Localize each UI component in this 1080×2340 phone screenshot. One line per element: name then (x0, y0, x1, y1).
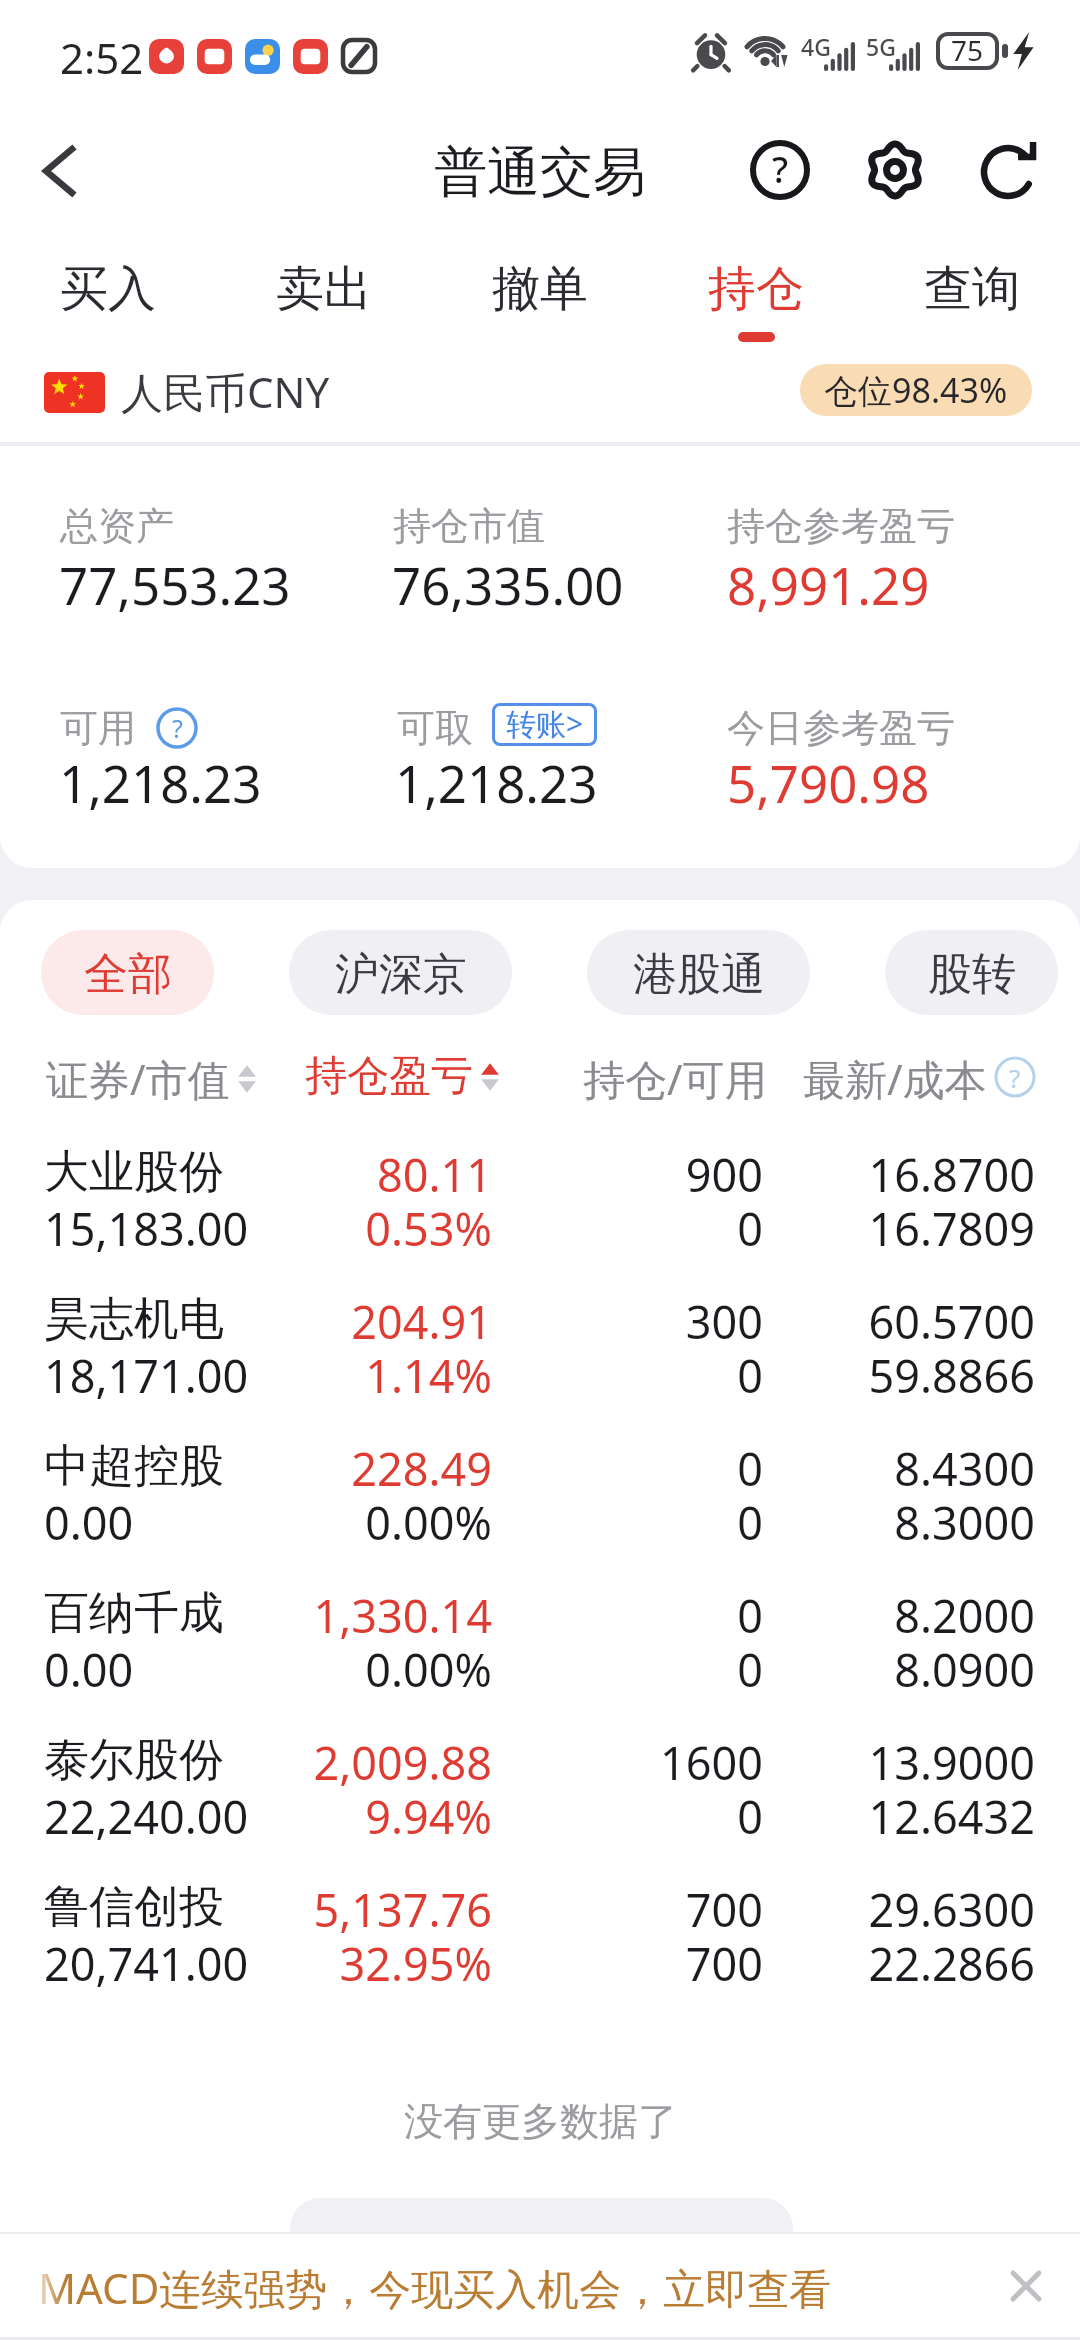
button[interactable]: 转账> (492, 703, 597, 746)
staticText: 鲁信创投 (44, 1879, 224, 1936)
staticText: ? (1009, 1060, 1021, 1095)
staticText: 8.3000 (615, 1492, 1035, 1553)
button[interactable]: Help (738, 128, 822, 212)
staticText: 0.00 (44, 1639, 134, 1700)
staticText: 可用 (60, 704, 136, 752)
button[interactable] (0, 1569, 1080, 1711)
staticText: 全部 (84, 947, 172, 1002)
button[interactable] (0, 1422, 1080, 1564)
staticText: 0.53% (72, 1198, 492, 1259)
button[interactable]: 股转 (885, 930, 1058, 1015)
staticText: 13.9000 (615, 1732, 1035, 1793)
staticText: MACD连续强势，今现买入机会，立即查看 (38, 2259, 832, 2316)
staticText: 8.4300 (615, 1438, 1035, 1499)
staticText: 12.6432 (615, 1786, 1035, 1847)
staticText: 0 (343, 1585, 763, 1646)
staticText: 港股通 (633, 947, 765, 1002)
button[interactable]: 可用说明 (156, 707, 198, 749)
staticText: 持仓参考盈亏 (727, 502, 955, 550)
button[interactable]: 买入 (0, 248, 216, 356)
staticText: 查询 (924, 259, 1020, 319)
staticText: 沪深京 (335, 947, 467, 1002)
staticText: 今日参考盈亏 (727, 704, 955, 752)
staticText: 0.00% (72, 1492, 492, 1553)
button[interactable]: Close (994, 2254, 1058, 2318)
staticText: 700 (343, 1933, 763, 1994)
staticText: 没有更多数据了 (404, 2097, 677, 2146)
staticText: 大业股份 (44, 1144, 224, 1201)
button[interactable]: 持仓盈亏 (305, 1050, 502, 1103)
staticText: 总资产 (60, 502, 174, 550)
staticText: 16.7809 (615, 1198, 1035, 1259)
staticText: 0 (343, 1786, 763, 1847)
button[interactable] (0, 1128, 1080, 1270)
staticText: 8.2000 (615, 1585, 1035, 1646)
staticText: 仓位98.43% (824, 367, 1008, 413)
staticText: 卖出 (276, 259, 372, 319)
staticText: 昊志机电 (44, 1291, 224, 1348)
staticText: 股转 (928, 947, 1016, 1002)
staticText: 20,741.00 (44, 1933, 249, 1994)
button[interactable]: Settings (853, 128, 937, 212)
staticText: 32.95% (72, 1933, 492, 1994)
staticText: 15,183.00 (44, 1198, 249, 1259)
button[interactable]: 卖出 (216, 248, 432, 356)
staticText: 持仓市值 (393, 502, 545, 550)
button[interactable]: 撤单 (432, 248, 648, 356)
staticText: 22.2866 (615, 1933, 1035, 1994)
staticText: 0 (343, 1345, 763, 1406)
staticText: 80.11 (72, 1144, 492, 1205)
button[interactable]: 持仓盈亏排序 (290, 2198, 793, 2340)
staticText: 900 (343, 1144, 763, 1205)
staticText: 5,790.98 (727, 748, 930, 817)
staticText: 18,171.00 (44, 1345, 249, 1406)
staticText: 2:52 (60, 29, 144, 86)
button[interactable]: 查询 (864, 248, 1080, 356)
button[interactable]: 沪深京 (289, 930, 512, 1015)
button[interactable]: 港股通 (587, 930, 810, 1015)
button[interactable] (0, 1275, 1080, 1417)
button[interactable]: 持仓 (648, 248, 864, 356)
staticText: 普通交易 (434, 139, 646, 206)
staticText: 0 (343, 1639, 763, 1700)
staticText: 0.00% (72, 1639, 492, 1700)
staticText: 0 (343, 1492, 763, 1553)
staticText: 60.5700 (615, 1291, 1035, 1352)
staticText: 转账> (506, 703, 584, 744)
staticText: 5,137.76 (72, 1879, 492, 1940)
staticText: 59.8866 (615, 1345, 1035, 1406)
staticText: 1,330.14 (72, 1585, 492, 1646)
staticText: 持仓盈亏排序 (410, 2230, 674, 2285)
staticText: 1,218.23 (395, 748, 598, 817)
staticText: 77,553.23 (59, 550, 291, 619)
staticText: 8,991.29 (727, 550, 930, 619)
button[interactable] (0, 1863, 1080, 2005)
button[interactable]: 说明 (994, 1056, 1036, 1098)
staticText: 泰尔股份 (44, 1732, 224, 1789)
button[interactable]: Back (18, 130, 100, 212)
staticText: 1,218.23 (59, 748, 262, 817)
button[interactable]: Refresh (967, 128, 1051, 212)
staticText: 29.6300 (615, 1879, 1035, 1940)
staticText: 1600 (343, 1732, 763, 1793)
staticText: 中超控股 (44, 1438, 224, 1495)
staticText: 228.49 (72, 1438, 492, 1499)
staticText: 22,240.00 (44, 1786, 249, 1847)
staticText: 持仓/可用 (583, 1050, 767, 1107)
staticText: 9.94% (72, 1786, 492, 1847)
button[interactable]: 仓位98.43% (800, 364, 1032, 416)
staticText: 204.91 (72, 1291, 492, 1352)
button[interactable]: 证券/市值 (46, 1050, 259, 1107)
staticText: 8.0900 (615, 1639, 1035, 1700)
staticText: 持仓盈亏 (305, 1050, 473, 1103)
button[interactable]: 全部 (41, 930, 214, 1015)
staticText: 75 (951, 31, 984, 69)
staticText: 买入 (60, 259, 156, 319)
staticText: 0 (343, 1438, 763, 1499)
staticText: 持仓 (708, 259, 804, 319)
staticText: 撤单 (492, 259, 588, 319)
staticText: 1.14% (72, 1345, 492, 1406)
button[interactable]: 人民币CNY (44, 364, 330, 421)
button[interactable] (0, 1716, 1080, 1858)
staticText: 700 (343, 1879, 763, 1940)
